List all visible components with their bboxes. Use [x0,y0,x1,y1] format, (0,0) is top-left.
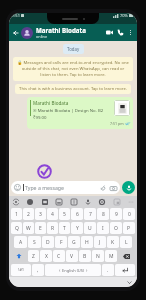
staticText: ※ Marathi Biodata | Design No. B2 [33,107,104,113]
button[interactable]: 5 [59,208,70,220]
staticText: , [37,267,39,274]
button[interactable]: Voice call [115,27,126,38]
button[interactable]: X [40,250,52,262]
button[interactable]: A [14,236,27,248]
button[interactable]: Back [11,28,21,38]
button[interactable]: Voice message [122,181,135,194]
staticText: J [99,239,101,246]
button[interactable]: 1 [11,208,22,220]
button[interactable]: S [28,236,41,248]
button[interactable]: clipboard [54,197,63,206]
button[interactable]: L [120,236,132,248]
staticText: N [96,253,100,260]
button[interactable]: E [35,222,46,234]
button[interactable]: Shift [11,250,27,262]
button[interactable]: more [126,197,135,206]
button[interactable]: M [105,250,117,262]
button[interactable]: P [123,222,135,234]
button[interactable]: U [84,222,96,234]
button[interactable]: H [81,236,93,248]
staticText: 3 [39,211,42,218]
staticText: H [85,239,89,246]
staticText: X [45,253,48,260]
staticText: V [70,253,74,260]
button[interactable]: mic [83,197,92,206]
button[interactable]: Backspace [118,250,135,262]
staticText: C [57,253,61,260]
staticText: . [107,267,109,274]
button[interactable]: 2 [23,208,34,220]
button[interactable]: sticker [25,197,34,206]
button[interactable]: 6 [71,208,83,220]
button[interactable]: Q [11,222,22,234]
staticText: L [125,239,128,246]
staticText: 70% [120,13,128,18]
staticText: Marathi Biodata [36,26,86,34]
button[interactable]: V [66,250,78,262]
staticText: Q [15,225,19,232]
staticText: F [60,239,63,246]
button[interactable]: Video call [104,27,115,38]
staticText: English (US) [62,268,85,273]
button[interactable]: Enter [115,264,135,276]
button[interactable]: Hide keyboard [126,279,133,286]
staticText: Today [67,46,80,52]
staticText: 9 [115,211,118,218]
staticText: 0 [128,211,131,218]
button[interactable]: J [94,236,106,248]
button[interactable]: C [53,250,65,262]
button[interactable]: 0 [123,208,135,220]
button[interactable]: gboard [11,197,20,206]
button[interactable]: O [110,222,122,234]
button[interactable]: translate [69,197,78,206]
button[interactable]: K [107,236,119,248]
staticText: E [39,225,42,232]
button[interactable]: D [42,236,54,248]
button[interactable]: F [55,236,67,248]
button[interactable]: R [47,222,58,234]
button[interactable]: I [97,222,109,234]
staticText: !#1 [18,267,25,273]
button[interactable]: More options [126,28,135,37]
button[interactable]: 9 [110,208,122,220]
staticText: S [33,239,36,246]
button[interactable]: 3 [35,208,46,220]
staticText: 6 [76,211,79,218]
staticText: online [36,34,48,39]
staticText: K [111,239,115,246]
button[interactable]: settings [97,197,106,206]
button[interactable]: ‹ [45,264,101,276]
button[interactable]: Marathi Biodata [27,97,133,129]
button[interactable]: Profile photo [21,27,33,39]
button[interactable]: 8 [97,208,109,220]
button[interactable]: Attach [99,184,107,192]
button[interactable]: . [102,264,114,276]
button[interactable]: This chat is with a business account. Ta… [19,86,127,92]
staticText: This chat is with a business account. Ta… [19,86,127,92]
button[interactable]: , [32,264,44,276]
button[interactable]: 7 [84,208,96,220]
button[interactable]: Today [67,46,80,52]
button[interactable]: gif [40,197,49,206]
staticText: 2 [27,211,30,218]
button[interactable]: G [68,236,80,248]
staticText: Type a message [25,184,64,191]
button[interactable]: Type a message [11,181,120,194]
button[interactable]: 🔒 Messages and calls are end-to-end encr… [17,60,129,78]
button[interactable]: !#1 [11,264,31,276]
button[interactable]: B [79,250,91,262]
button[interactable]: Y [71,222,83,234]
button[interactable]: Z [28,250,39,262]
button[interactable]: 4 [47,208,58,220]
staticText: W [26,225,31,232]
staticText: 🔒 Messages and calls are end-to-end encr… [17,60,129,78]
staticText: A [19,239,23,246]
button[interactable]: W [23,222,34,234]
staticText: Z [32,253,35,260]
button[interactable]: pip [112,197,121,206]
button[interactable]: T [59,222,70,234]
button[interactable]: N [92,250,104,262]
staticText: 4 [51,211,54,218]
button[interactable]: Marathi Biodata [36,26,104,39]
button[interactable]: Camera [109,184,117,192]
